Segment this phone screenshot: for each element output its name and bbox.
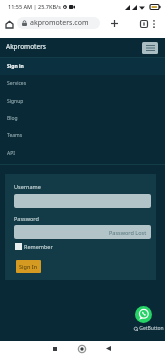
- staticText: Signup: [7, 98, 24, 105]
- button[interactable]: New tab: [107, 16, 122, 31]
- staticText: API: [7, 150, 15, 157]
- staticText: Services: [7, 80, 27, 87]
- button[interactable]: Password Lost: [14, 225, 151, 239]
- button[interactable]: Home: [1, 16, 17, 32]
- staticText: Sign in: [7, 63, 24, 70]
- button[interactable]: Sign In: [16, 260, 41, 273]
- staticText: 11:55 AM | 25.7KB/s: [8, 3, 61, 10]
- button[interactable]: API: [0, 145, 165, 162]
- button[interactable]: [14, 194, 151, 208]
- staticText: akpromoters.com: [30, 18, 89, 28]
- staticText: Username: [14, 183, 41, 190]
- button[interactable]: Signup: [0, 93, 165, 110]
- staticText: Blog: [7, 115, 18, 122]
- button[interactable]: Tabs: [136, 16, 151, 31]
- button[interactable]: Home: [72, 339, 91, 358]
- button[interactable]: Blog: [0, 110, 165, 127]
- button[interactable]: Back: [99, 339, 118, 358]
- staticText: Remember: [24, 243, 53, 250]
- button[interactable]: akpromoters.com: [17, 17, 100, 29]
- button[interactable]: Remember: [15, 243, 53, 250]
- button[interactable]: Menu: [142, 42, 158, 54]
- staticText: Teams: [7, 132, 23, 139]
- staticText: Sign In: [19, 263, 38, 270]
- staticText: GetButton: [139, 325, 164, 332]
- button[interactable]: Sign in: [0, 58, 165, 75]
- staticText: Password Lost: [109, 229, 147, 236]
- button[interactable]: Recent apps: [45, 339, 64, 358]
- staticText: Password: [14, 215, 39, 222]
- staticText: Akpromoters: [6, 42, 46, 51]
- button[interactable]: Chat on WhatsApp: [135, 306, 152, 323]
- button[interactable]: More options: [146, 16, 161, 31]
- button[interactable]: Teams: [0, 127, 165, 144]
- button[interactable]: Services: [0, 75, 165, 92]
